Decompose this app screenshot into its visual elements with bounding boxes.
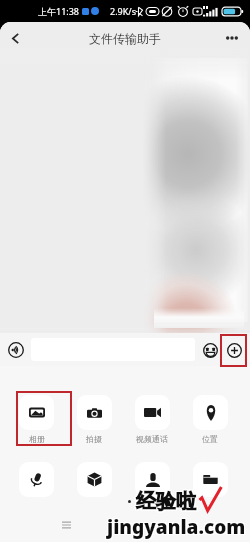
staticText: 经验啦 [135,488,195,513]
staticText: jingyanla.com [107,515,246,541]
staticText: 经验啦 [137,490,197,515]
staticText: jingyanla.com [107,513,246,539]
staticText: jingyanla.com [108,514,247,540]
staticText: 位置 [202,434,218,444]
staticText: 文件传输助手 [89,31,161,46]
button[interactable]: 拍摄 [65,395,123,444]
staticText: jingyanla.com [108,515,247,541]
button[interactable]: 视频通话 [123,395,181,444]
button[interactable]: 相册 [8,395,65,444]
button[interactable]: Folder [181,462,239,497]
staticText: 相册 [29,434,45,444]
staticText: jingyanla.com [106,513,245,539]
staticText: 经验啦 [136,488,196,513]
staticText: 上午11:38 [38,5,80,17]
staticText: 经验啦 [135,490,195,515]
button[interactable]: Voice input [3,337,28,362]
staticText: 经验啦 [135,489,195,514]
staticText: jingyanla.com [107,514,246,540]
staticText: 2.9K/s [110,5,136,17]
button[interactable]: Files [65,462,123,497]
button[interactable]: Voice input [8,462,65,497]
staticText: jingyanla.com [108,513,247,539]
button[interactable]: 位置 [181,395,239,444]
button[interactable]: Menu [61,519,72,530]
staticText: jingyanla.com [106,515,245,541]
staticText: 拍摄 [86,434,102,444]
staticText: 经验啦 [136,489,196,514]
button[interactable]: More functions [223,339,245,361]
staticText: 经验啦 [137,489,197,514]
button[interactable]: Emoji [199,339,221,361]
staticText: jingyanla.com [106,514,245,540]
staticText: 视频通话 [136,434,168,444]
button[interactable]: Contact card [123,462,181,497]
staticText: 经验啦 [137,488,197,513]
button[interactable]: More options [220,26,244,50]
button[interactable]: Back [3,26,27,50]
staticText: 经验啦 [136,490,196,515]
